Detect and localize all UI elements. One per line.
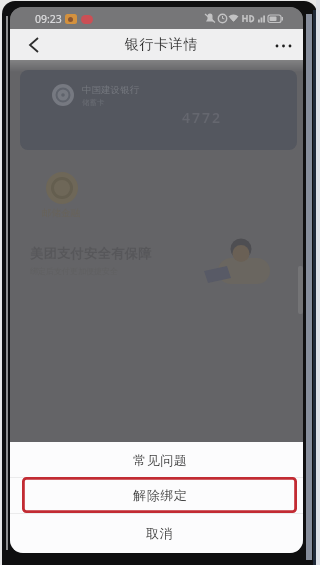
button[interactable]: 取消 — [10, 513, 303, 553]
staticText: 取消 — [146, 525, 173, 541]
staticText: 解除绑定 — [133, 487, 187, 503]
staticText: 4772 — [182, 108, 223, 127]
button[interactable]: 美团支付安全有保障 — [22, 235, 292, 283]
button[interactable] — [268, 36, 300, 54]
staticText: 邮储金融 — [42, 207, 80, 219]
staticText: 常见问题 — [133, 452, 187, 468]
staticText: 银行卡详情 — [124, 36, 198, 54]
button[interactable]: 中国建设银行 — [20, 70, 297, 150]
staticText: 中国建设银行 — [82, 84, 139, 96]
button[interactable]: 常见问题 — [10, 442, 303, 477]
staticText: 09:23 — [35, 12, 62, 26]
button[interactable]: 邮储金融 — [42, 168, 82, 220]
staticText: 储蓄卡 — [82, 98, 105, 107]
staticText: 美团支付安全有保障 — [30, 245, 152, 261]
button[interactable] — [20, 35, 46, 55]
button[interactable]: 解除绑定 — [10, 477, 303, 513]
